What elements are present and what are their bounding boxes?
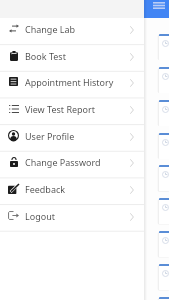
staticText: View Test Report bbox=[25, 103, 96, 115]
staticText: Appointment History bbox=[25, 76, 114, 88]
button[interactable]: Book Test bbox=[0, 45, 144, 72]
button[interactable]: View Test Report bbox=[0, 98, 144, 125]
staticText: User Profile bbox=[25, 130, 75, 142]
staticText: Change Password bbox=[25, 156, 101, 168]
button[interactable] bbox=[159, 198, 169, 224]
button[interactable]: Change Lab bbox=[0, 18, 144, 45]
button[interactable] bbox=[159, 264, 169, 290]
button[interactable] bbox=[159, 297, 169, 300]
staticText: Change Lab bbox=[25, 23, 76, 35]
staticText: Logout bbox=[25, 210, 55, 222]
button[interactable] bbox=[159, 100, 169, 126]
button[interactable]: User Profile bbox=[0, 125, 144, 152]
button[interactable]: Open navigation menu bbox=[152, 0, 166, 18]
button[interactable] bbox=[159, 231, 169, 257]
button[interactable]: Appointment History bbox=[0, 71, 144, 98]
button[interactable] bbox=[159, 133, 169, 159]
staticText: Feedback bbox=[25, 183, 66, 195]
button[interactable] bbox=[159, 34, 169, 60]
staticText: Book Test bbox=[25, 50, 66, 62]
button[interactable]: Logout bbox=[0, 205, 144, 232]
button[interactable] bbox=[159, 67, 169, 93]
button[interactable] bbox=[159, 165, 169, 191]
button[interactable]: Change Password bbox=[0, 151, 144, 178]
button[interactable]: Feedback bbox=[0, 178, 144, 205]
